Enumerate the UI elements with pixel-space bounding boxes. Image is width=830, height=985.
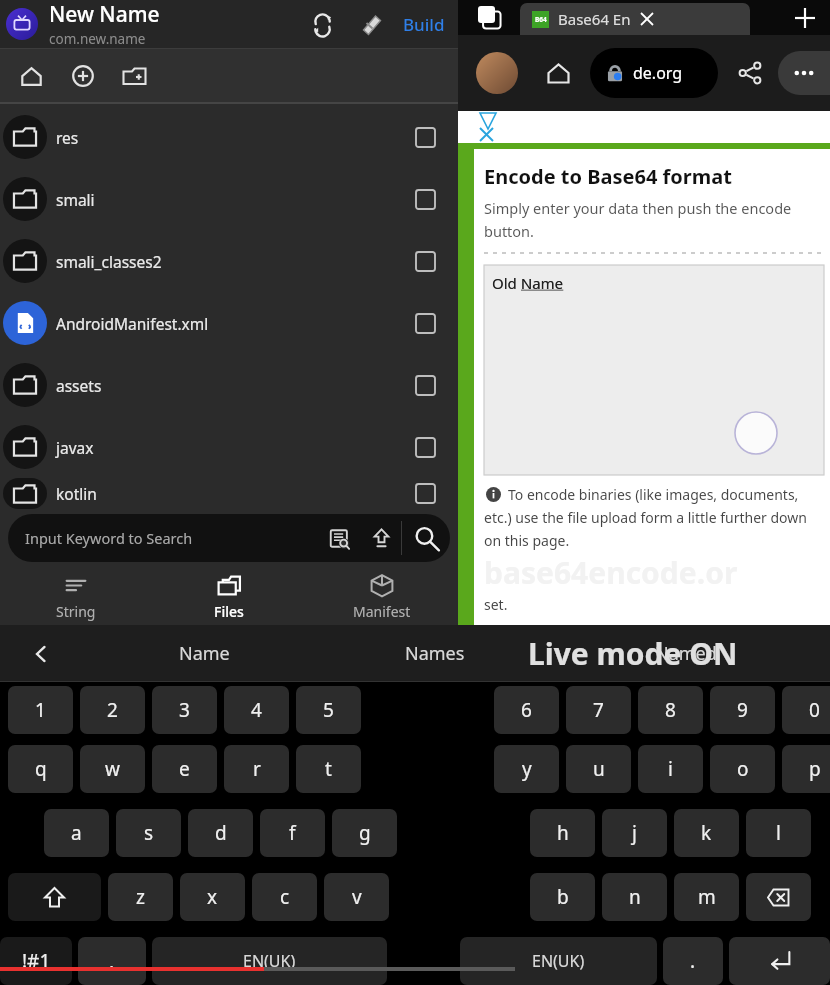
button[interactable]: !#1 xyxy=(0,937,72,985)
button[interactable]: Select javax xyxy=(403,425,447,469)
button[interactable]: l xyxy=(746,809,811,857)
button[interactable]: Select AndroidManifest.xml xyxy=(403,301,447,345)
button[interactable]: Enter xyxy=(729,937,830,985)
button[interactable]: New file xyxy=(62,55,104,97)
button[interactable]: z xyxy=(108,873,173,921)
button[interactable]: Refresh xyxy=(304,5,342,43)
button[interactable]: f xyxy=(260,809,325,857)
button[interactable]: b xyxy=(530,873,595,921)
button[interactable]: u xyxy=(566,745,631,793)
button[interactable]: EN(UK) xyxy=(460,937,657,985)
button[interactable]: Home xyxy=(538,53,578,93)
button[interactable]: Manifest xyxy=(305,567,458,625)
button[interactable]: Upload xyxy=(361,518,401,558)
button[interactable]: 3 xyxy=(152,686,217,734)
button[interactable]: Backspace xyxy=(746,873,811,921)
button[interactable]: i xyxy=(638,745,703,793)
button[interactable]: Home xyxy=(10,55,52,97)
button[interactable]: Named xyxy=(542,625,830,682)
button[interactable]: c xyxy=(252,873,317,921)
button[interactable]: Select assets xyxy=(403,363,447,407)
button[interactable]: 9 xyxy=(710,686,775,734)
button[interactable]: 4 xyxy=(224,686,289,734)
button[interactable]: w xyxy=(80,745,145,793)
button[interactable]: Eraser xyxy=(352,5,390,43)
button[interactable]: Shift xyxy=(8,873,101,921)
button[interactable]: Names xyxy=(327,625,542,682)
button[interactable]: k xyxy=(674,809,739,857)
button[interactable]: y xyxy=(494,745,559,793)
button[interactable]: EN(UK) xyxy=(152,937,387,985)
button[interactable]: Period xyxy=(663,937,723,985)
button[interactable]: smali xyxy=(0,168,458,230)
button[interactable]: g xyxy=(332,809,397,857)
button[interactable]: n xyxy=(602,873,667,921)
button[interactable]: Select kotlin xyxy=(403,478,447,509)
button[interactable]: Build xyxy=(398,7,450,42)
button[interactable]: More options xyxy=(778,51,830,95)
button[interactable]: 8 xyxy=(638,686,703,734)
button[interactable]: Input Keyword to Search xyxy=(8,514,450,562)
button[interactable]: p xyxy=(782,745,830,793)
button[interactable]: d xyxy=(188,809,253,857)
button[interactable]: New folder xyxy=(113,55,155,97)
button[interactable]: h xyxy=(530,809,595,857)
staticText: String xyxy=(56,602,96,621)
button[interactable]: r xyxy=(224,745,289,793)
staticText: base64encode.or xyxy=(484,552,738,593)
staticText: j xyxy=(632,820,637,846)
button[interactable]: q xyxy=(8,745,73,793)
staticText: q xyxy=(35,756,47,782)
button[interactable]: res xyxy=(0,106,458,168)
button[interactable]: Share xyxy=(730,53,770,93)
button[interactable]: 1 xyxy=(8,686,73,734)
button[interactable]: m xyxy=(674,873,739,921)
button[interactable]: v xyxy=(324,873,389,921)
button[interactable]: Search xyxy=(402,514,450,562)
button[interactable]: Search in file xyxy=(319,518,359,558)
button[interactable]: Profile xyxy=(476,52,518,94)
staticText: 2 xyxy=(107,697,118,723)
button[interactable]: 0 xyxy=(782,686,830,734)
staticText: s xyxy=(144,820,154,846)
button[interactable]: j xyxy=(602,809,667,857)
button[interactable]: B64 xyxy=(520,3,750,35)
button[interactable]: o xyxy=(710,745,775,793)
button[interactable]: AndroidManifest.xml xyxy=(0,292,458,354)
staticText: on this page. xyxy=(484,531,570,550)
staticText: z xyxy=(136,884,145,910)
button[interactable]: javax xyxy=(0,416,458,478)
button[interactable]: Old Name xyxy=(484,265,824,475)
button[interactable]: assets xyxy=(0,354,458,416)
button[interactable]: Files xyxy=(152,567,305,625)
button[interactable]: 7 xyxy=(566,686,631,734)
button[interactable]: e xyxy=(152,745,217,793)
button[interactable]: Select smali_classes2 xyxy=(403,239,447,283)
button[interactable]: Name xyxy=(82,625,327,682)
staticText: assets xyxy=(56,375,403,396)
button[interactable]: t xyxy=(296,745,361,793)
button[interactable]: New tab xyxy=(780,0,830,35)
button[interactable]: Select res xyxy=(403,115,447,159)
button[interactable]: Back xyxy=(0,625,82,682)
button[interactable]: 5 xyxy=(296,686,361,734)
button[interactable]: String xyxy=(0,567,152,625)
button[interactable]: x xyxy=(180,873,245,921)
staticText: y xyxy=(522,756,532,782)
button[interactable]: 2 xyxy=(80,686,145,734)
button[interactable]: Select smali xyxy=(403,177,447,221)
button[interactable]: a xyxy=(44,809,109,857)
button[interactable]: smali_classes2 xyxy=(0,230,458,292)
button[interactable]: de.org xyxy=(590,48,718,98)
button[interactable]: Comma xyxy=(78,937,146,985)
button[interactable]: s xyxy=(116,809,181,857)
button[interactable]: kotlin xyxy=(0,478,458,509)
staticText: 8 xyxy=(665,697,676,723)
staticText: Live mode ON xyxy=(528,633,738,674)
button[interactable]: Close tab xyxy=(635,7,659,31)
button[interactable]: Tabs xyxy=(458,0,520,35)
button[interactable]: 6 xyxy=(494,686,559,734)
staticText: New Name xyxy=(49,0,160,29)
staticText: f xyxy=(289,820,296,846)
staticText: m xyxy=(698,884,716,910)
